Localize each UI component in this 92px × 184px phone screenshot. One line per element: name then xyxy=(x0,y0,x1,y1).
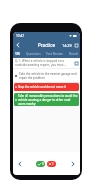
staticText: 14:29 xyxy=(62,43,72,48)
staticText: Take the vehicle to the nearest garage a… xyxy=(19,72,78,80)
staticText: Result xyxy=(69,52,78,56)
staticText: Practice xyxy=(38,42,56,48)
button[interactable]: Stop the vehicle and do not move it xyxy=(14,83,79,91)
button[interactable]: Take the vehicle to the nearest garage a… xyxy=(13,69,80,82)
button[interactable]: Next question xyxy=(69,160,77,168)
button[interactable]: Previous question xyxy=(16,160,24,168)
button[interactable]: Bookmark question xyxy=(73,60,79,66)
button[interactable]: Wrong answers xyxy=(47,161,56,167)
staticText: Take all reasonable precautions to avoid… xyxy=(18,94,78,106)
button[interactable]: Correct answers xyxy=(36,161,45,167)
button[interactable]: Back xyxy=(14,41,22,49)
staticText: Test Review xyxy=(46,52,63,56)
button[interactable]: Take all reasonable precautions to avoid… xyxy=(14,93,79,106)
staticText: Q-1 : When a vehicle is stopped on a roa… xyxy=(15,59,72,67)
staticText: 10:47 xyxy=(16,34,25,38)
staticText: 0 xyxy=(42,162,44,166)
staticText: 1 xyxy=(52,162,54,166)
staticText: Questions xyxy=(26,52,41,56)
button[interactable]: Options xyxy=(73,42,79,48)
staticText: Stop the vehicle and do not move it xyxy=(18,85,66,89)
staticText: 1/5 xyxy=(15,52,20,56)
